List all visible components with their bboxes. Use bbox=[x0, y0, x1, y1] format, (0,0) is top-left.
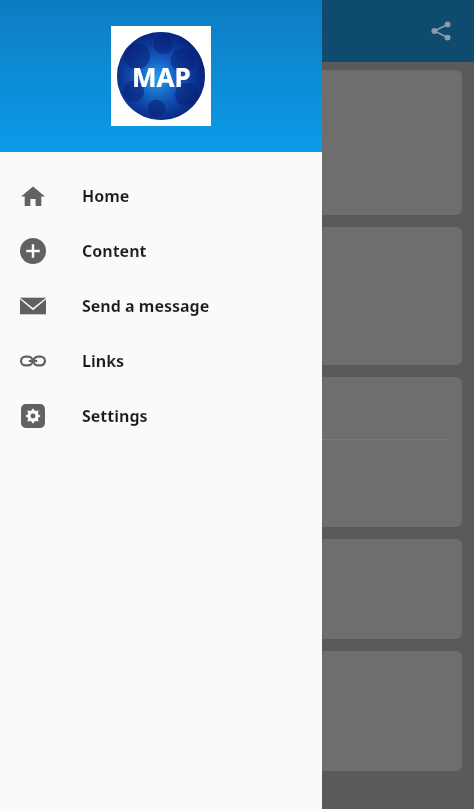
staticText: Links bbox=[82, 350, 125, 372]
staticText: Christian Living bbox=[26, 128, 164, 154]
staticText: Settings bbox=[82, 405, 148, 427]
button[interactable]: Content bbox=[0, 223, 322, 278]
button[interactable]: Home bbox=[0, 168, 322, 223]
button[interactable]: Links bbox=[0, 333, 322, 388]
button[interactable]: Workshop: bbox=[12, 651, 462, 771]
button[interactable]: Spiritual Living bbox=[12, 227, 462, 365]
button[interactable]: Send a message bbox=[0, 278, 322, 333]
staticText: Content bbox=[82, 240, 147, 262]
staticText: Spiritual Living bbox=[26, 282, 158, 308]
button[interactable]: Share bbox=[418, 8, 464, 54]
button[interactable] bbox=[12, 539, 462, 639]
staticText: MAP bbox=[132, 59, 191, 94]
button[interactable]: Medien. Rund bbox=[12, 377, 462, 527]
staticText: Home bbox=[82, 185, 130, 207]
button[interactable]: Settings bbox=[0, 388, 322, 443]
staticText: Send a message bbox=[82, 295, 210, 317]
button[interactable]: Christian Living bbox=[12, 70, 462, 215]
